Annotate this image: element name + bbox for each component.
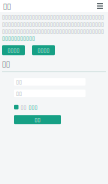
staticText: ▯▯	[16, 90, 22, 96]
staticText: ▯▯▯▯▯▯▯▯▯▯▯▯▯▯▯▯▯▯▯▯▯▯▯▯▯▯▯▯▯▯▯▯▯▯	[2, 14, 104, 20]
staticText: ▯▯	[2, 59, 10, 68]
button[interactable]: ▯▯▯▯	[32, 45, 55, 55]
button[interactable]: ▯▯▯▯	[2, 45, 25, 55]
staticText: ▯▯	[16, 79, 22, 85]
staticText: ▯▯	[34, 117, 40, 123]
staticText: ▯▯▯▯	[37, 47, 49, 53]
button[interactable]: ▯▯▯	[28, 104, 37, 110]
staticText: ▯▯▯	[28, 104, 37, 110]
staticText: ▯▯▯▯▯▯▯▯▯▯▯▯▯▯▯▯▯▯▯▯▯▯▯▯▯▯▯▯▯▯▯▯▯▯	[2, 28, 104, 34]
staticText: ▯▯▯▯	[7, 47, 19, 53]
staticText: ▯▯	[3, 1, 11, 11]
staticText: ▯▯▯▯▯▯▯▯▯▯▯▯▯▯▯▯▯▯▯▯▯▯▯▯▯▯▯▯▯▯▯▯▯▯	[2, 21, 104, 27]
staticText: ▯▯▯▯▯▯▯▯▯▯▯	[2, 35, 35, 41]
staticText: ▯▯	[20, 104, 26, 110]
button[interactable]: Agree to terms	[14, 105, 18, 109]
button[interactable]: Menu	[96, 2, 104, 10]
button[interactable]: ▯▯	[14, 115, 61, 124]
